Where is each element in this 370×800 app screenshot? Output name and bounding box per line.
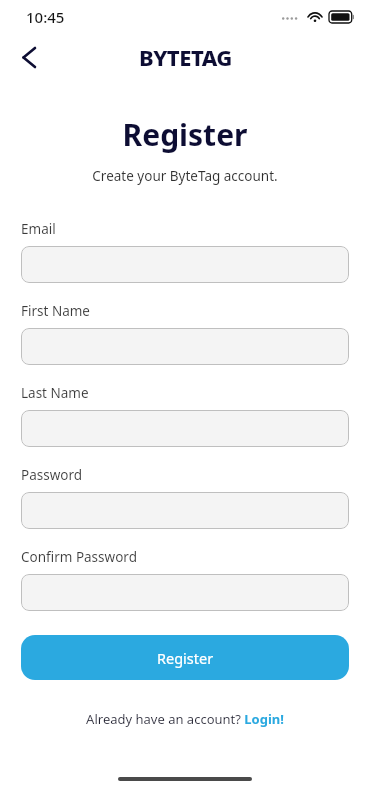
- staticText: Last Name: [21, 384, 89, 402]
- staticText: Email: [21, 220, 56, 238]
- button[interactable]: [21, 410, 349, 447]
- staticText: Register: [0, 114, 370, 155]
- button[interactable]: Already have an account? Login!: [21, 710, 349, 728]
- button[interactable]: [21, 328, 349, 365]
- button[interactable]: [21, 492, 349, 529]
- staticText: Confirm Password: [21, 548, 137, 566]
- staticText: Password: [21, 466, 83, 484]
- staticText: Create your ByteTag account.: [0, 167, 370, 185]
- staticText: BYTETAG: [139, 42, 232, 72]
- button[interactable]: Register: [21, 635, 349, 680]
- staticText: Already have an account? Login!: [86, 710, 284, 728]
- button[interactable]: [21, 574, 349, 611]
- staticText: 10:45: [26, 7, 65, 27]
- staticText: First Name: [21, 302, 90, 320]
- button[interactable]: [21, 246, 349, 283]
- staticText: Register: [157, 648, 214, 668]
- button[interactable]: Back: [8, 37, 48, 77]
